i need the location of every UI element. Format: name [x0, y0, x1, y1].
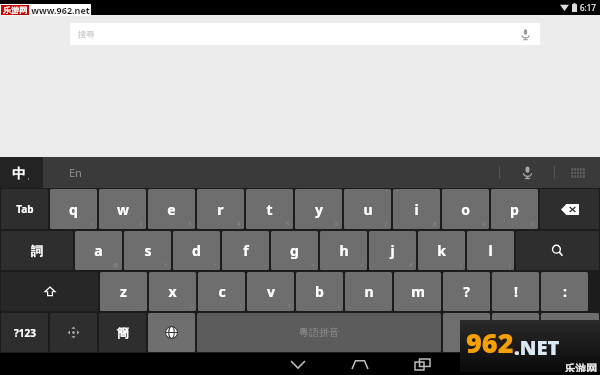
button[interactable]: t	[246, 189, 293, 229]
button[interactable]: a	[75, 231, 122, 270]
button[interactable]: i	[393, 189, 440, 229]
staticText: m	[411, 282, 425, 301]
button[interactable]: Hide keyboard	[267, 353, 329, 375]
staticText: 7	[384, 220, 388, 228]
staticText: 中	[12, 165, 25, 181]
staticText: '	[240, 302, 242, 310]
button[interactable]: b	[296, 272, 343, 311]
staticText: ~	[385, 302, 389, 310]
button[interactable]: Shift	[1, 272, 98, 311]
staticText: g	[290, 241, 299, 260]
button[interactable]: En	[43, 157, 499, 188]
staticText: 2	[139, 220, 143, 228]
button[interactable]: Comma	[443, 313, 490, 352]
staticText: w	[117, 200, 129, 219]
staticText: n	[364, 282, 374, 301]
button[interactable]: l	[467, 231, 514, 270]
button[interactable]: r	[197, 189, 244, 229]
button[interactable]: 搜尋	[70, 23, 540, 45]
button[interactable]: Arrow keys	[50, 313, 97, 352]
staticText: ，	[25, 172, 32, 181]
staticText: ?	[288, 302, 291, 310]
staticText: b	[315, 282, 324, 301]
staticText: .NET	[514, 334, 560, 361]
button[interactable]: Candidate words	[1, 231, 73, 270]
button[interactable]: Enter	[541, 313, 599, 352]
button[interactable]: 粵語拼音	[197, 313, 441, 352]
button[interactable]: Voice search	[519, 28, 532, 41]
button[interactable]: h	[320, 231, 367, 270]
staticText: z	[120, 282, 127, 301]
staticText: =	[311, 261, 315, 269]
button[interactable]: Change language	[148, 313, 195, 352]
staticText: 簡	[117, 325, 129, 340]
staticText: -	[264, 261, 266, 269]
staticText: 粵語拼音	[299, 326, 339, 339]
button[interactable]: j	[369, 231, 416, 270]
button[interactable]: Symbols	[1, 313, 48, 352]
staticText: 5	[286, 220, 290, 228]
button[interactable]: f	[222, 231, 269, 270]
button[interactable]: e	[148, 189, 195, 229]
button[interactable]: Keyboard settings	[555, 157, 600, 188]
button[interactable]: Home	[329, 353, 391, 375]
staticText: /	[361, 261, 364, 269]
staticText: 1	[90, 220, 94, 228]
staticText: @	[113, 261, 119, 269]
staticText: p	[510, 200, 519, 219]
button[interactable]: Recent apps	[391, 353, 453, 375]
staticText: s	[144, 241, 152, 260]
staticText: En	[69, 165, 82, 180]
button[interactable]: q	[50, 189, 97, 229]
staticText: u	[363, 200, 373, 219]
staticText: •	[214, 261, 217, 269]
staticText: r	[217, 200, 224, 219]
button[interactable]: u	[344, 189, 391, 229]
button[interactable]: 中	[0, 157, 43, 188]
button[interactable]: d	[173, 231, 220, 270]
button[interactable]: k	[418, 231, 465, 270]
staticText: x	[168, 282, 177, 301]
button[interactable]: g	[271, 231, 318, 270]
button[interactable]: Simplified Chinese	[99, 313, 146, 352]
staticText: 6:17	[580, 2, 596, 13]
staticText: 4	[237, 220, 241, 228]
staticText: 乐游网	[564, 361, 600, 372]
button[interactable]: n	[345, 272, 392, 311]
button[interactable]: Tab	[1, 189, 48, 229]
staticText: o	[461, 200, 470, 219]
button[interactable]: Backspace	[540, 189, 599, 229]
staticText: :	[191, 302, 193, 310]
staticText: !	[514, 282, 518, 301]
button[interactable]: ?	[443, 272, 490, 311]
staticText: ?123	[14, 326, 36, 340]
button[interactable]: o	[442, 189, 489, 229]
staticText: t	[266, 200, 273, 219]
button[interactable]: s	[124, 231, 171, 270]
staticText: 962	[466, 324, 514, 361]
button[interactable]: Period	[492, 313, 539, 352]
staticText: ?	[463, 282, 470, 301]
button[interactable]: p	[491, 189, 538, 229]
staticText: )	[509, 261, 511, 269]
staticText: 搜尋	[78, 29, 519, 39]
button[interactable]: Search	[516, 231, 599, 270]
button[interactable]: x	[149, 272, 196, 311]
button[interactable]: m	[394, 272, 441, 311]
staticText: f	[243, 241, 249, 260]
button[interactable]: Voice input	[500, 157, 554, 188]
staticText: !	[338, 302, 340, 310]
button[interactable]: !	[492, 272, 539, 311]
button[interactable]: c	[198, 272, 245, 311]
button[interactable]: :	[541, 272, 588, 311]
staticText: 6	[335, 220, 339, 228]
staticText: v	[267, 282, 275, 301]
button[interactable]: v	[247, 272, 294, 311]
staticText: j	[390, 241, 395, 260]
staticText: k	[437, 241, 446, 260]
staticText: *	[164, 261, 168, 269]
button[interactable]: y	[295, 189, 342, 229]
staticText: www.962.net	[29, 4, 90, 16]
button[interactable]: z	[100, 272, 147, 311]
button[interactable]: w	[99, 189, 146, 229]
